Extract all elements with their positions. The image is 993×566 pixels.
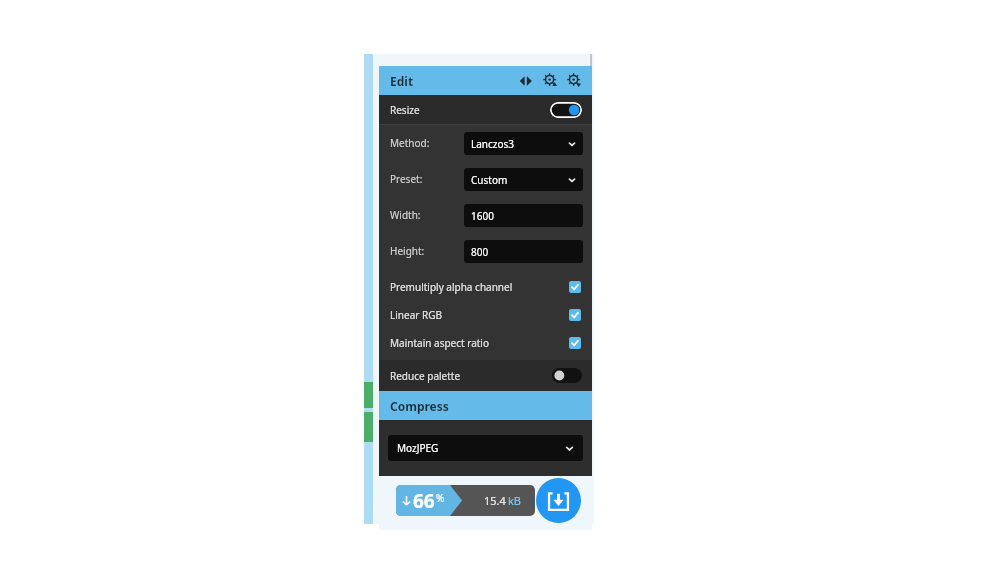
button[interactable]: Download bbox=[536, 478, 581, 523]
other: Resize enabled bbox=[550, 102, 582, 118]
staticText: Maintain aspect ratio bbox=[390, 336, 489, 350]
staticText: Custom bbox=[471, 173, 508, 187]
staticText: Premultiply alpha channel bbox=[390, 280, 513, 294]
button[interactable]: Preset: bbox=[379, 161, 592, 197]
button[interactable]: Compress bbox=[379, 391, 592, 420]
button[interactable]: MozJPEG bbox=[388, 435, 583, 461]
staticText: % bbox=[436, 491, 445, 505]
staticText: MozJPEG bbox=[397, 441, 439, 455]
staticText: Compress bbox=[390, 398, 449, 414]
button[interactable]: Toggle before after bbox=[516, 71, 535, 90]
other: Reduce palette off bbox=[552, 368, 582, 383]
button[interactable]: Reduce palette bbox=[379, 360, 592, 391]
button[interactable]: Width: bbox=[379, 197, 592, 233]
button[interactable]: Maintain aspect ratio bbox=[379, 329, 592, 357]
button[interactable]: Copy settings down bbox=[565, 71, 584, 90]
staticText: Method: bbox=[390, 136, 430, 150]
staticText: Edit bbox=[390, 73, 414, 89]
button[interactable]: Copy settings up bbox=[541, 71, 560, 90]
button[interactable]: Resize bbox=[379, 95, 592, 124]
staticText: kB bbox=[508, 493, 522, 508]
staticText: Linear RGB bbox=[390, 308, 442, 322]
staticText: Preset: bbox=[390, 172, 423, 186]
staticText: 15.4 bbox=[484, 493, 506, 508]
button[interactable]: Height: bbox=[379, 233, 592, 269]
button[interactable]: 15.4 bbox=[396, 485, 535, 516]
staticText: Reduce palette bbox=[390, 369, 461, 383]
staticText: 1600 bbox=[471, 209, 494, 223]
staticText: Resize bbox=[390, 103, 420, 117]
staticText: Width: bbox=[390, 208, 421, 222]
staticText: 800 bbox=[471, 245, 489, 259]
button[interactable]: Method: bbox=[379, 125, 592, 161]
staticText: Height: bbox=[390, 244, 425, 258]
button[interactable]: Linear RGB bbox=[379, 301, 592, 329]
button[interactable]: Premultiply alpha channel bbox=[379, 273, 592, 301]
staticText: 66 bbox=[413, 488, 435, 514]
staticText: Lanczos3 bbox=[471, 137, 515, 151]
